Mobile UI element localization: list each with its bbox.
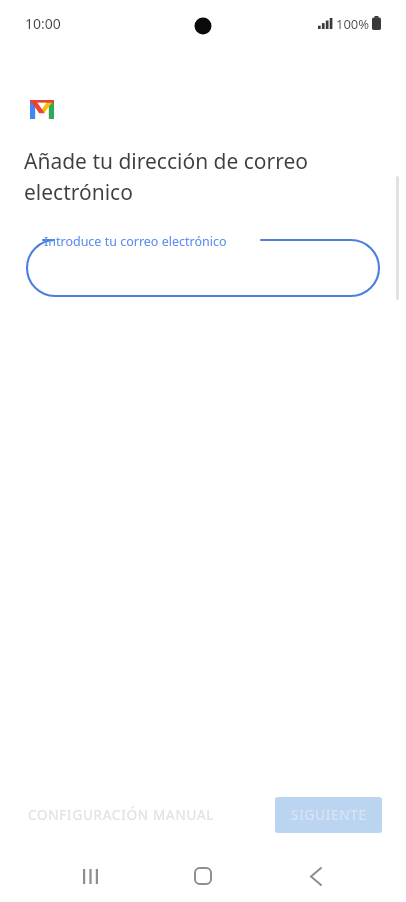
button[interactable]: Introduce tu correo electrónico — [27, 240, 379, 296]
staticText: Introduce tu correo electrónico — [44, 233, 227, 250]
button[interactable]: Home — [175, 850, 231, 902]
button[interactable]: SIGUIENTE — [275, 797, 382, 833]
staticText: Añade tu dirección de correo electrónico — [24, 147, 386, 206]
staticText: CONFIGURACIÓN MANUAL — [28, 806, 215, 824]
staticText: 10:00 — [25, 14, 61, 33]
button[interactable]: Back — [288, 850, 344, 902]
staticText: SIGUIENTE — [291, 806, 367, 824]
staticText: 100% — [336, 15, 370, 33]
button[interactable]: Recent apps — [62, 850, 118, 902]
button[interactable]: CONFIGURACIÓN MANUAL — [14, 798, 229, 832]
